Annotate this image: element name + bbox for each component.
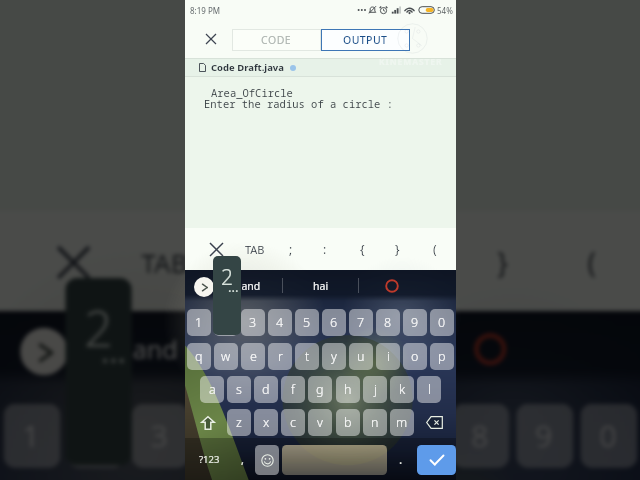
button[interactable]: , (231, 444, 253, 474)
staticText: { (414, 242, 426, 280)
button[interactable]: OUTPUT (321, 29, 410, 51)
button[interactable]: k (390, 376, 414, 403)
button[interactable]: { (348, 234, 376, 264)
button[interactable]: ; (217, 226, 284, 297)
button[interactable]: : (311, 234, 339, 264)
button[interactable]: Close (200, 28, 222, 50)
button[interactable]: ...and (68, 311, 224, 385)
button[interactable]: f (281, 376, 305, 403)
button[interactable]: n (363, 409, 387, 436)
button[interactable]: 1 (4, 404, 61, 468)
button[interactable]: z (227, 409, 251, 436)
staticText: OUTPUT (343, 33, 388, 47)
button[interactable]: o (403, 343, 427, 370)
button[interactable]: ; (277, 234, 305, 264)
button[interactable]: 3 (132, 404, 189, 468)
button[interactable]: ?123 (191, 444, 227, 474)
button[interactable]: { (386, 226, 452, 297)
staticText: TAB (141, 245, 189, 280)
button[interactable]: g (308, 376, 332, 403)
button[interactable]: : (298, 226, 364, 297)
button[interactable]: x (254, 409, 278, 436)
button[interactable]: TAB (129, 226, 201, 297)
staticText: 6 (343, 416, 362, 456)
staticText: y (331, 348, 337, 365)
button[interactable]: . (389, 444, 413, 474)
button[interactable]: ...and (214, 270, 280, 301)
button[interactable]: Hide toolbar (46, 235, 98, 287)
button[interactable]: 0 (580, 404, 637, 468)
button[interactable]: 2 (214, 309, 238, 336)
staticText: 7 (357, 314, 365, 331)
button[interactable]: ( (421, 234, 449, 264)
staticText: j (374, 381, 377, 398)
button[interactable]: hai (239, 311, 402, 385)
button[interactable]: r (268, 343, 292, 370)
button[interactable]: CODE (232, 29, 321, 51)
staticText: a (209, 381, 216, 398)
button[interactable]: Voice input (361, 270, 422, 301)
button[interactable]: 5 (295, 309, 319, 336)
staticText: f (291, 381, 295, 398)
button[interactable]: u (349, 343, 373, 370)
button[interactable]: l (417, 376, 441, 403)
staticText: i (387, 348, 390, 365)
button[interactable]: Space (282, 445, 387, 475)
button[interactable]: 3 (241, 309, 265, 336)
button[interactable]: More suggestions (194, 277, 214, 297)
button[interactable]: 7 (388, 404, 445, 468)
button[interactable]: Emoji (255, 445, 279, 475)
button[interactable]: m (390, 409, 414, 436)
button[interactable]: 9 (516, 404, 573, 468)
button[interactable]: } (469, 226, 535, 297)
button[interactable]: a (200, 376, 224, 403)
button[interactable]: y (322, 343, 346, 370)
button[interactable]: Enter (417, 445, 456, 475)
staticText: q (195, 348, 203, 365)
button[interactable]: TAB (240, 234, 270, 264)
button[interactable]: c (281, 409, 305, 436)
button[interactable]: 5 (260, 404, 317, 468)
button[interactable]: 8 (376, 309, 400, 336)
button[interactable]: s (227, 376, 251, 403)
button[interactable]: i (376, 343, 400, 370)
button[interactable]: 0 (430, 309, 454, 336)
staticText: 54% (437, 5, 453, 16)
button[interactable]: w (214, 343, 238, 370)
button[interactable]: b (336, 409, 360, 436)
staticText: t (305, 348, 310, 365)
button[interactable]: 1 (187, 309, 211, 336)
staticText: hai (303, 333, 341, 366)
staticText: p (438, 348, 446, 365)
button[interactable]: ( (559, 226, 626, 297)
staticText: 0 (438, 314, 446, 331)
button[interactable]: v (308, 409, 332, 436)
button[interactable]: Voice input (417, 311, 561, 385)
button[interactable]: 8 (452, 404, 509, 468)
button[interactable]: 4 (268, 309, 292, 336)
button[interactable]: d (254, 376, 278, 403)
button[interactable]: 6 (322, 309, 346, 336)
button[interactable]: t (295, 343, 319, 370)
button[interactable]: 7 (349, 309, 373, 336)
button[interactable]: q (187, 343, 211, 370)
button[interactable]: 4 (196, 404, 253, 468)
button[interactable]: j (363, 376, 387, 403)
button[interactable]: Shift (193, 409, 223, 436)
staticText: 2 (221, 263, 233, 292)
button[interactable]: } (383, 234, 411, 264)
button[interactable]: e (241, 343, 265, 370)
button[interactable]: More suggestions (20, 328, 68, 375)
staticText: 1 (23, 416, 42, 456)
button[interactable]: p (430, 343, 454, 370)
staticText: 3 (249, 314, 257, 331)
button[interactable]: Backspace (419, 409, 449, 436)
button[interactable]: hai (286, 270, 355, 301)
button[interactable]: 9 (403, 309, 427, 336)
button[interactable]: 2 (68, 404, 125, 468)
button[interactable]: Hide toolbar (205, 238, 227, 260)
button[interactable]: Code Draft.java (199, 58, 296, 77)
button[interactable]: h (336, 376, 360, 403)
button[interactable]: 6 (324, 404, 381, 468)
staticText: 9 (535, 416, 554, 456)
